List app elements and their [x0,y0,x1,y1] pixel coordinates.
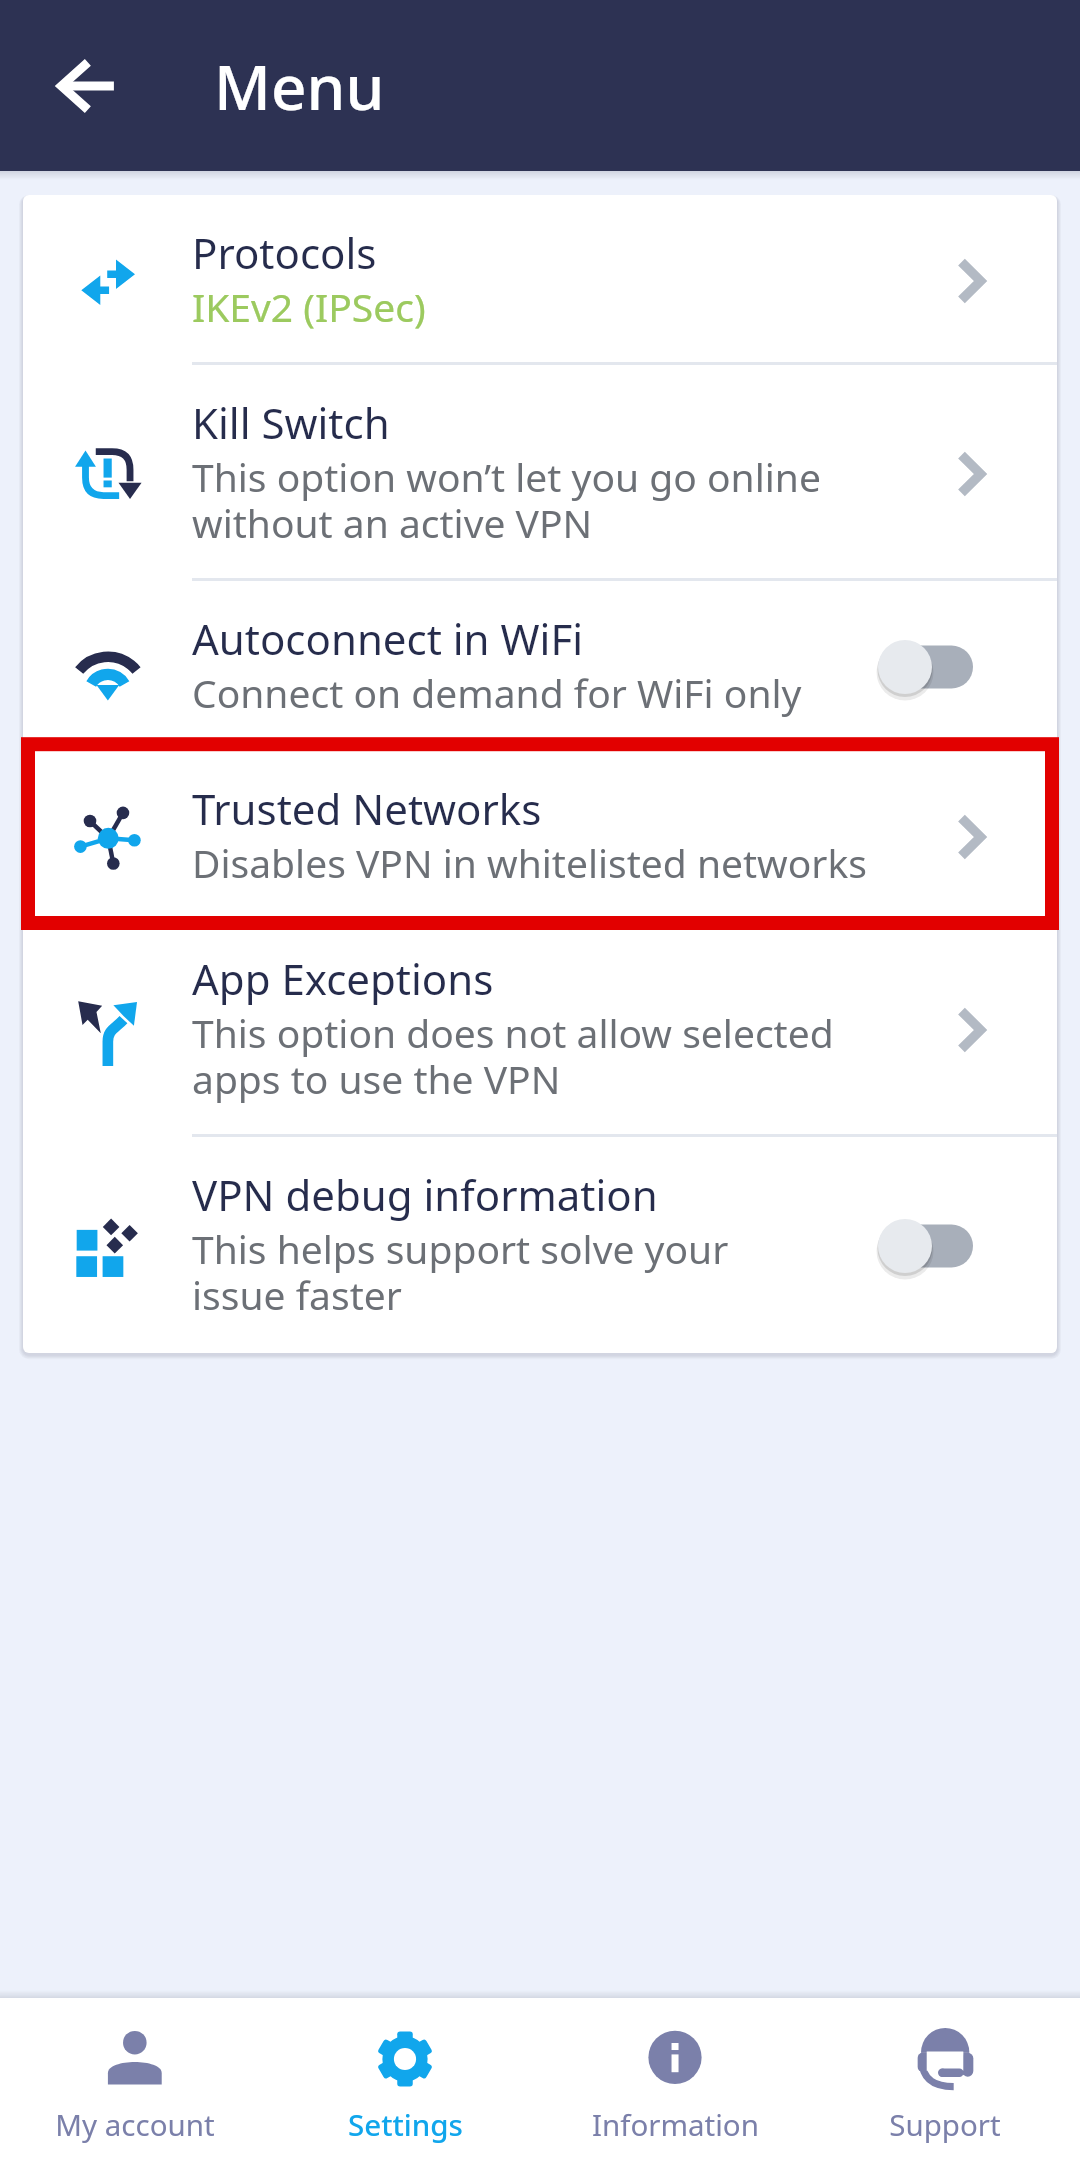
staticText: Disables VPN in whitelisted networks [192,842,867,888]
button[interactable]: Back [55,55,117,117]
staticText: Settings [348,2109,463,2144]
staticText: Information [592,2109,759,2144]
button[interactable]: Open [936,995,1006,1065]
staticText: Support [889,2109,1001,2144]
staticText: VPN debug information [192,1172,658,1221]
staticText: Kill Switch [192,400,390,449]
staticText: My account [55,2109,215,2144]
staticText: This option does not allow selected apps… [192,1012,834,1104]
staticText: Trusted Networks [192,786,542,835]
button[interactable]: App Exceptions [23,921,1057,1134]
button[interactable]: Open [936,439,1006,509]
button[interactable]: Kill Switch [23,365,1057,578]
button[interactable]: Trusted Networks [23,751,1057,918]
staticText: Connect on demand for WiFi only [192,672,802,718]
button[interactable]: Autoconnect in WiFi [23,581,1057,748]
button[interactable]: Open [936,246,1006,316]
staticText: Menu [214,44,385,128]
button[interactable]: My account [0,1998,270,2166]
button[interactable]: Support [810,1998,1080,2166]
button[interactable]: Toggle [868,1211,983,1281]
button[interactable]: Toggle [868,632,983,702]
staticText: This helps support solve your issue fast… [192,1228,729,1320]
button[interactable]: Information [540,1998,810,2166]
staticText: Protocols [192,230,377,279]
staticText: Autoconnect in WiFi [192,616,584,665]
staticText: IKEv2 (IPSec) [192,286,426,332]
button[interactable]: VPN debug information [23,1137,1057,1350]
button[interactable]: Settings [270,1998,540,2166]
button[interactable]: Open [936,802,1006,872]
staticText: This option won’t let you go online with… [192,456,821,548]
staticText: App Exceptions [192,956,494,1005]
button[interactable]: Protocols [23,195,1057,362]
